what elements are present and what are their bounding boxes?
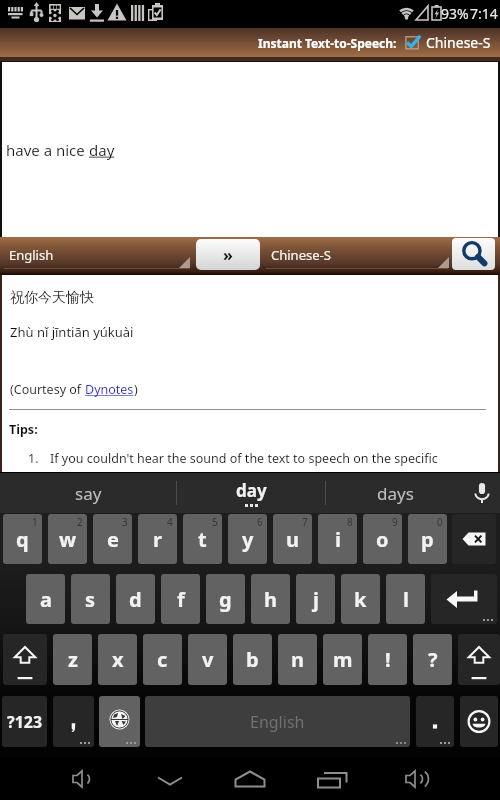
- staticText: English: [9, 246, 54, 264]
- staticText: 5: [212, 515, 218, 529]
- button[interactable]: j: [296, 574, 335, 624]
- staticText: 6: [257, 515, 263, 529]
- button[interactable]: d: [116, 574, 155, 624]
- staticText: c: [157, 646, 168, 673]
- button[interactable]: English: [0, 237, 191, 271]
- button[interactable]: h: [251, 574, 290, 624]
- staticText: a: [40, 586, 52, 613]
- button[interactable]: Volume up: [381, 757, 451, 800]
- staticText: l: [403, 586, 409, 613]
- staticText: ?: [428, 646, 438, 673]
- staticText: days: [377, 482, 414, 505]
- staticText: 7: [302, 515, 308, 529]
- button[interactable]: Search: [452, 238, 495, 270]
- staticText: g: [219, 586, 232, 613]
- staticText: v: [202, 646, 214, 673]
- staticText: m: [333, 646, 353, 673]
- button[interactable]: Voice input: [464, 473, 500, 513]
- button[interactable]: u: [273, 514, 312, 564]
- button[interactable]: Chinese-S: [262, 237, 450, 271]
- button[interactable]: v: [188, 634, 227, 685]
- staticText: day: [89, 140, 115, 160]
- button[interactable]: l: [386, 574, 425, 624]
- button[interactable]: s: [71, 574, 110, 624]
- button[interactable]: r: [138, 514, 177, 564]
- button[interactable]: o: [363, 514, 402, 564]
- button[interactable]: [416, 696, 454, 747]
- staticText: 1.: [28, 450, 39, 467]
- button[interactable]: y: [228, 514, 267, 564]
- button[interactable]: Hide keyboard: [135, 757, 205, 800]
- button[interactable]: [431, 574, 497, 624]
- staticText: h: [264, 586, 277, 613]
- staticText: 9: [392, 515, 398, 529]
- button[interactable]: i: [318, 514, 357, 564]
- button[interactable]: »: [196, 239, 260, 270]
- staticText: English: [250, 711, 305, 733]
- staticText: z: [68, 646, 78, 673]
- button[interactable]: ?: [413, 634, 452, 685]
- staticText: Zhù nǐ jīntiān yúkuài: [10, 323, 134, 341]
- staticText: 4: [167, 515, 173, 529]
- staticText: e: [107, 526, 119, 553]
- staticText: f: [177, 586, 185, 613]
- button[interactable]: e: [93, 514, 132, 564]
- staticText: i: [335, 526, 341, 553]
- button[interactable]: z: [53, 634, 92, 685]
- staticText: day: [236, 479, 267, 502]
- button[interactable]: q: [3, 514, 42, 564]
- button[interactable]: k: [341, 574, 380, 624]
- button[interactable]: x: [98, 634, 137, 685]
- button[interactable]: f: [161, 574, 200, 624]
- button[interactable]: w: [48, 514, 87, 564]
- button[interactable]: Volume down: [48, 757, 118, 800]
- staticText: n: [291, 646, 304, 673]
- staticText: s: [85, 586, 96, 613]
- staticText: r: [153, 526, 162, 553]
- staticText: k: [354, 586, 367, 613]
- button[interactable]: c: [143, 634, 182, 685]
- staticText: 8: [347, 515, 353, 529]
- button[interactable]: days: [326, 473, 464, 513]
- staticText: have a nice: [6, 140, 89, 160]
- button[interactable]: [452, 514, 496, 564]
- button[interactable]: n: [278, 634, 317, 685]
- button[interactable]: day: [177, 473, 325, 513]
- staticText: 祝你今天愉快: [10, 289, 94, 307]
- button[interactable]: Instant Text-to-Speech:: [258, 33, 491, 52]
- button[interactable]: p: [408, 514, 447, 564]
- button[interactable]: !: [368, 634, 407, 685]
- button[interactable]: g: [206, 574, 245, 624]
- staticText: ): [134, 381, 138, 398]
- staticText: 7:14: [470, 4, 498, 23]
- staticText: u: [286, 526, 299, 553]
- button[interactable]: b: [233, 634, 272, 685]
- staticText: x: [112, 646, 124, 673]
- staticText: 93%: [441, 4, 469, 23]
- button[interactable]: Home: [215, 757, 285, 800]
- staticText: d: [129, 586, 142, 613]
- staticText: 2: [77, 515, 83, 529]
- staticText: p: [421, 526, 434, 553]
- button[interactable]: [458, 634, 500, 685]
- button[interactable]: a: [26, 574, 65, 624]
- staticText: !: [385, 646, 391, 673]
- button[interactable]: Recents: [297, 757, 367, 800]
- button[interactable]: ?123: [2, 696, 47, 747]
- staticText: b: [246, 646, 259, 673]
- button[interactable]: [460, 696, 498, 747]
- staticText: 0: [437, 515, 443, 529]
- staticText: w: [59, 526, 77, 553]
- staticText: o: [376, 526, 389, 553]
- staticText: Tips:: [9, 421, 38, 438]
- staticText: (Courtesy of: [10, 381, 85, 398]
- button[interactable]: [53, 696, 94, 747]
- button[interactable]: say: [0, 473, 176, 513]
- button[interactable]: m: [323, 634, 362, 685]
- button[interactable]: Dynotes: [85, 381, 134, 398]
- button[interactable]: [3, 634, 47, 685]
- button[interactable]: t: [183, 514, 222, 564]
- button[interactable]: English: [145, 696, 410, 747]
- button[interactable]: [99, 696, 140, 747]
- staticText: If you couldn't hear the sound of the te…: [50, 450, 438, 467]
